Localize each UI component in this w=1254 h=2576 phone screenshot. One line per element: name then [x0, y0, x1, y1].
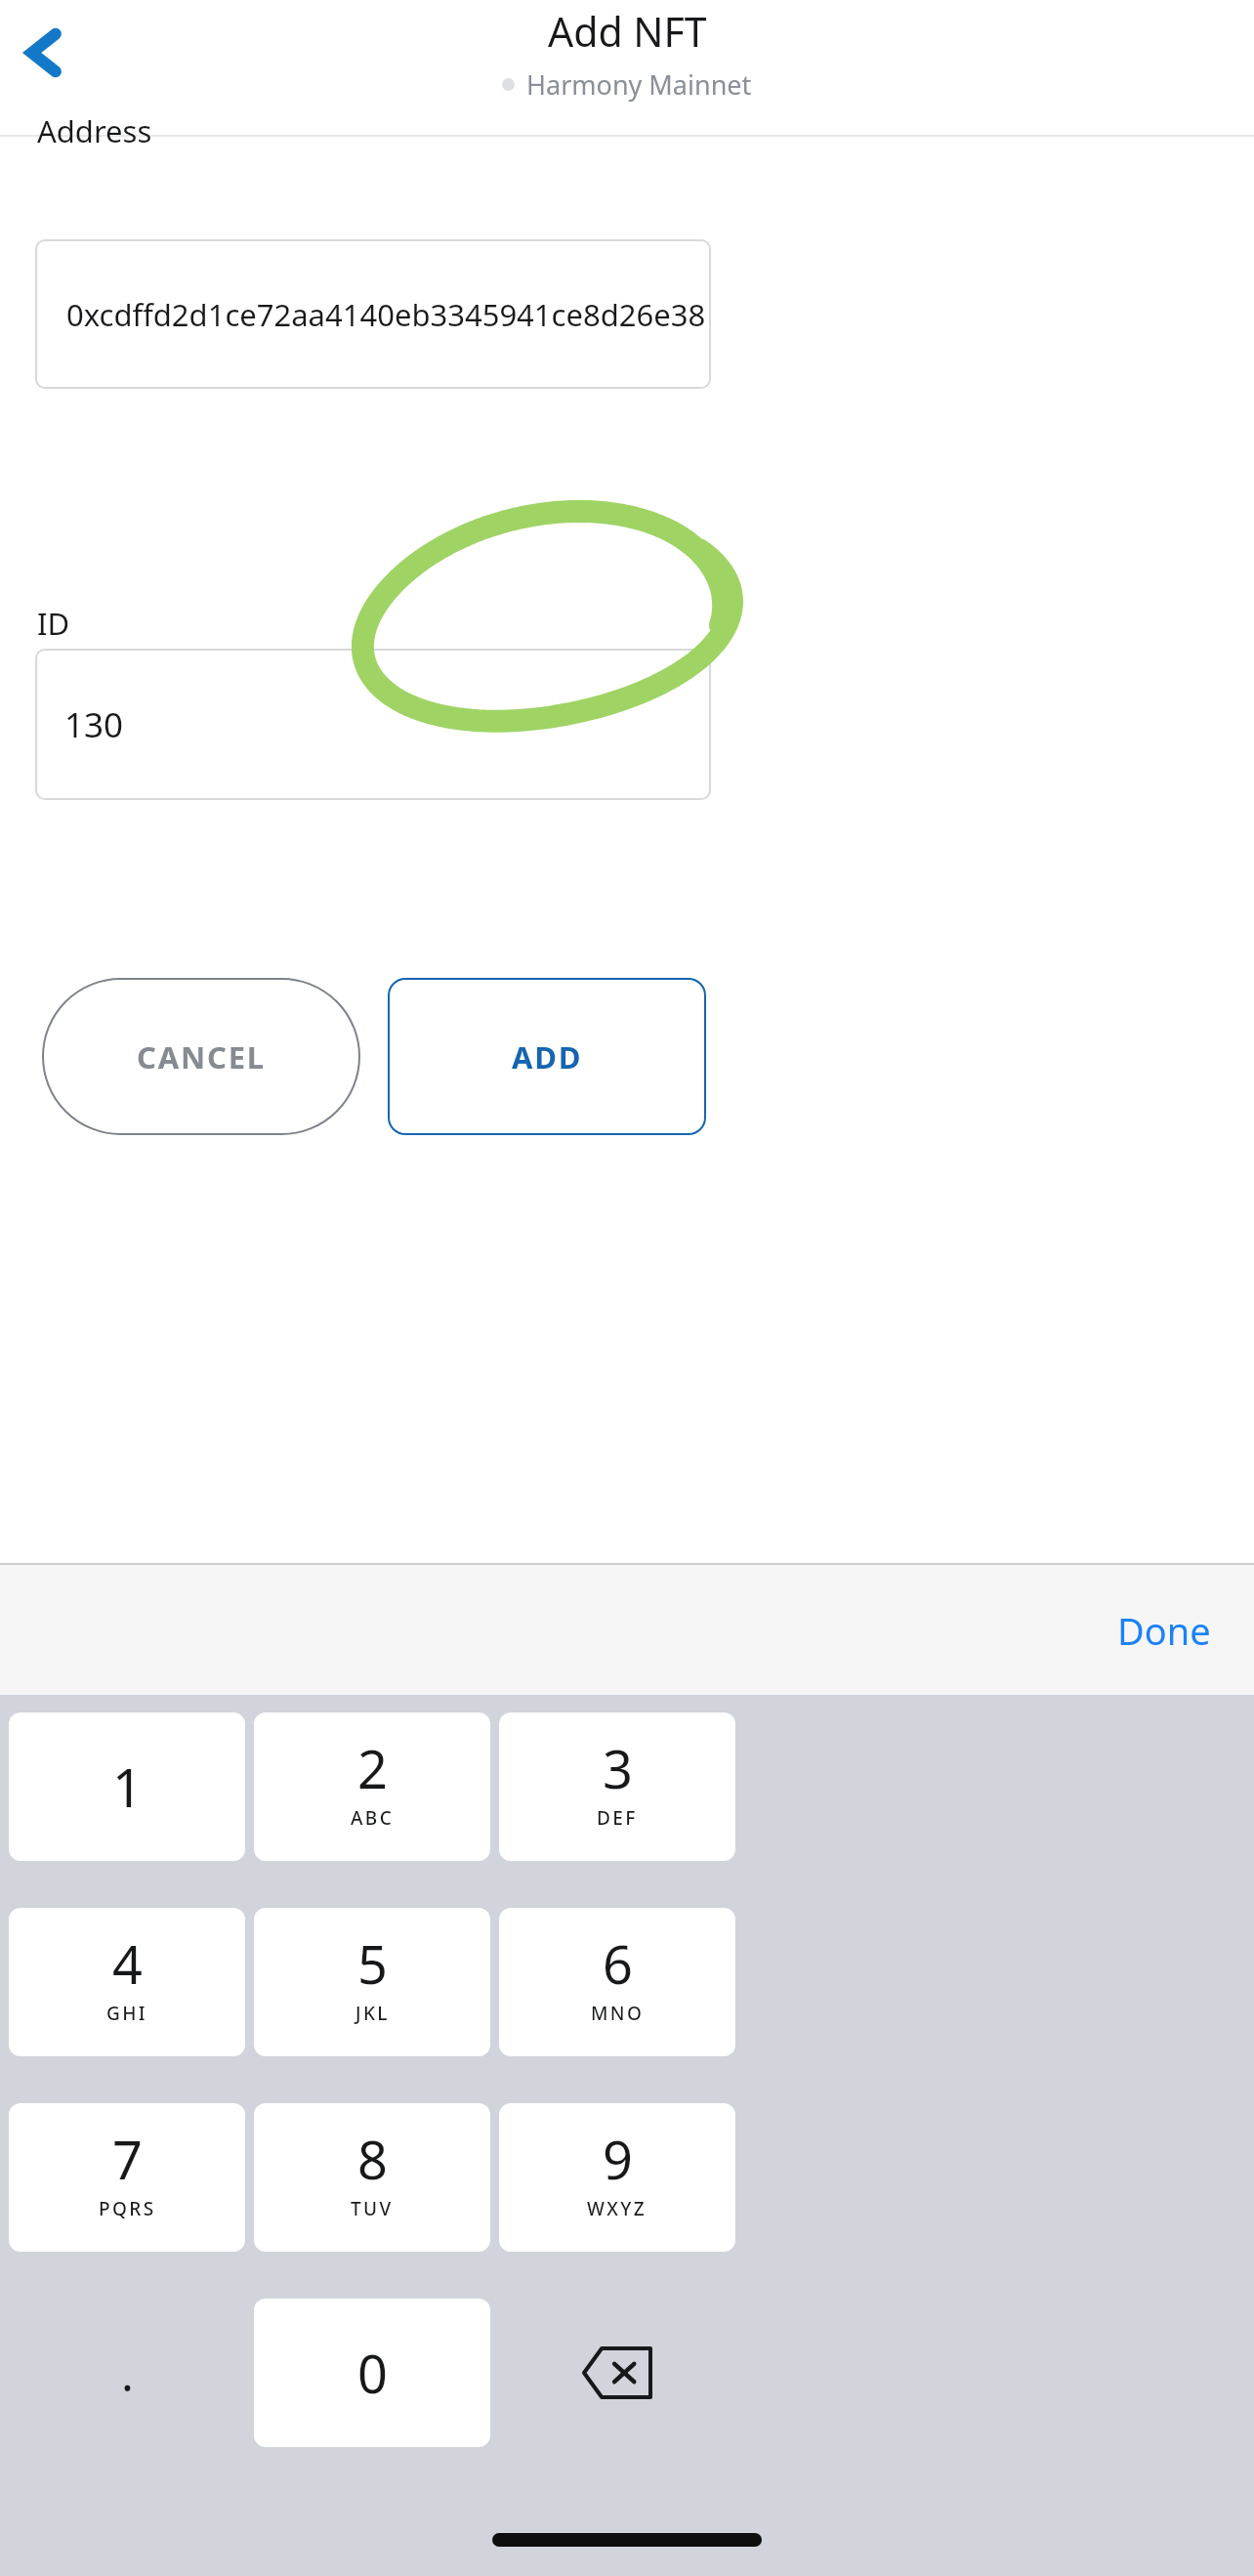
staticText: TUV: [351, 2196, 394, 2221]
button[interactable]: Backspace: [499, 2299, 735, 2447]
staticText: 0: [357, 2337, 388, 2409]
staticText: 8: [357, 2123, 388, 2195]
button[interactable]: 2: [254, 1712, 490, 1861]
button[interactable]: 4: [9, 1908, 245, 2056]
button[interactable]: Back: [4, 12, 86, 94]
staticText: 0xcdffd2d1ce72aa4140eb3345941ce8d26e38c4…: [66, 294, 711, 335]
staticText: ABC: [351, 1805, 395, 1831]
button[interactable]: 5: [254, 1908, 490, 2056]
button[interactable]: Done: [1117, 1605, 1211, 1656]
staticText: JKL: [355, 2001, 390, 2026]
staticText: 6: [603, 1927, 633, 2000]
button[interactable]: 8: [254, 2103, 490, 2252]
staticText: 4: [112, 1927, 143, 2000]
staticText: ID: [37, 603, 70, 644]
button[interactable]: 6: [499, 1908, 735, 2056]
staticText: MNO: [591, 2001, 645, 2026]
staticText: 1: [112, 1751, 143, 1823]
staticText: DEF: [597, 1805, 638, 1831]
staticText: 5: [357, 1927, 388, 2000]
staticText: Address: [37, 110, 152, 151]
staticText: Done: [1117, 1605, 1211, 1656]
staticText: PQRS: [99, 2196, 156, 2221]
button[interactable]: 1: [9, 1712, 245, 1861]
staticText: 2: [357, 1732, 388, 1804]
staticText: 9: [603, 2123, 633, 2195]
staticText: WXYZ: [587, 2196, 648, 2221]
button[interactable]: 7: [9, 2103, 245, 2252]
button[interactable]: 0: [254, 2299, 490, 2447]
staticText: Add NFT: [548, 4, 707, 59]
staticText: Harmony Mainnet: [526, 66, 752, 103]
button[interactable]: 130: [35, 649, 711, 800]
button[interactable]: ADD: [388, 978, 706, 1135]
button[interactable]: .: [9, 2299, 245, 2447]
button[interactable]: CANCEL: [42, 978, 360, 1135]
staticText: 7: [112, 2123, 143, 2195]
staticText: .: [121, 2342, 134, 2405]
staticText: 130: [64, 701, 124, 748]
staticText: 3: [603, 1732, 633, 1804]
staticText: GHI: [106, 2001, 147, 2026]
button[interactable]: 0xcdffd2d1ce72aa4140eb3345941ce8d26e38c4…: [35, 239, 711, 389]
button[interactable]: 9: [499, 2103, 735, 2252]
button[interactable]: 3: [499, 1712, 735, 1861]
staticText: ADD: [512, 1036, 583, 1077]
staticText: CANCEL: [137, 1036, 266, 1077]
